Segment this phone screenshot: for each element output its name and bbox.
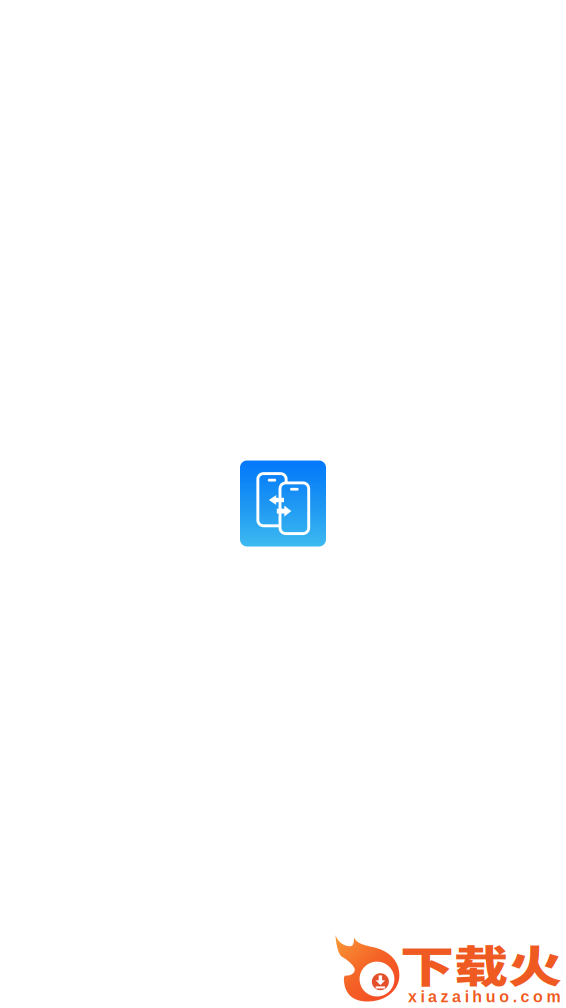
staticText: 下载火 (400, 924, 562, 1003)
staticText: xiazaihuo.com (408, 988, 560, 1006)
